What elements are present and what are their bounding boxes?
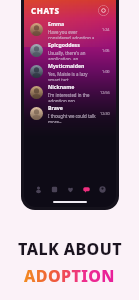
staticText: Brave <box>48 104 63 111</box>
button[interactable]: Discover <box>47 182 61 196</box>
staticText: Emma <box>48 20 65 27</box>
button[interactable]: Chats <box>79 182 93 196</box>
staticText: Nickname <box>48 83 75 90</box>
staticText: I thought we could talk more~ <box>48 113 97 123</box>
staticText: Have you ever considered adopting a pet? <box>48 29 99 39</box>
staticText: I'm interested in the adoption pro... <box>48 92 97 102</box>
button[interactable]: Mysticmaiden <box>24 62 116 81</box>
staticText: Mysticmaiden <box>48 62 85 69</box>
staticText: ADOPTION <box>24 265 115 287</box>
button[interactable]: Brave <box>24 104 116 123</box>
staticText: Usually, there's an application, an... <box>48 50 99 60</box>
staticText: 1:05 <box>102 48 110 53</box>
staticText: Yes, Maisie is a lazy smart tart <box>48 71 99 81</box>
staticText: 1:24 <box>102 27 110 32</box>
button[interactable]: Nickname <box>24 83 116 102</box>
staticText: 1:00 <box>102 69 110 74</box>
button[interactable]: Epicgoddess <box>24 41 116 60</box>
button[interactable]: Favorites <box>63 182 77 196</box>
button[interactable]: Profile <box>31 182 45 196</box>
button[interactable]: Account <box>95 182 109 196</box>
staticText: 12:30 <box>100 111 110 116</box>
staticText: TALK ABOUT <box>18 238 122 260</box>
button[interactable]: Settings <box>98 5 109 16</box>
staticText: Epicgoddess <box>48 41 80 48</box>
staticText: 12:56 <box>100 90 110 95</box>
staticText: CHATS <box>31 5 60 16</box>
button[interactable]: Emma <box>24 20 116 39</box>
